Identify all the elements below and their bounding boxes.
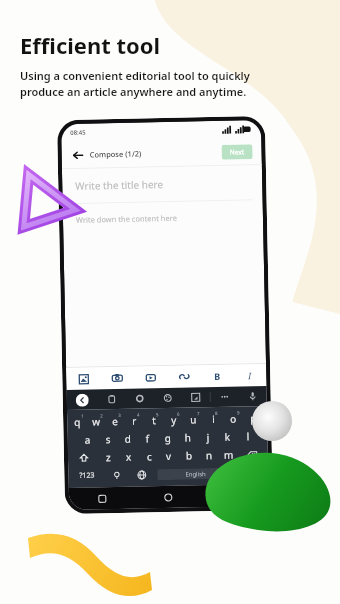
button[interactable]: Emoji <box>104 466 130 484</box>
staticText: k <box>224 430 231 444</box>
button[interactable]: b <box>179 446 199 465</box>
staticText: Compose (1/2) <box>89 148 142 160</box>
button[interactable]: g <box>157 429 178 447</box>
staticText: w <box>92 414 100 429</box>
staticText: u <box>190 412 197 426</box>
staticText: 3 <box>118 412 121 418</box>
button[interactable]: v <box>159 447 179 465</box>
staticText: i <box>212 412 215 426</box>
button[interactable]: f <box>137 429 158 448</box>
button[interactable]: h <box>177 428 198 447</box>
button[interactable]: Write the title here <box>62 165 263 203</box>
button[interactable]: Shift <box>70 448 98 467</box>
button[interactable]: n <box>199 446 219 464</box>
button[interactable]: Collapse keyboard <box>67 389 98 410</box>
staticText: s <box>105 432 111 446</box>
staticText: g <box>164 431 172 445</box>
staticText: Efficient tool <box>20 30 161 60</box>
staticText: z <box>106 450 111 464</box>
button[interactable]: t <box>145 411 165 429</box>
button[interactable]: i <box>205 410 225 428</box>
staticText: Next <box>229 147 245 157</box>
button[interactable]: l <box>237 427 258 445</box>
button[interactable]: Next <box>221 144 253 160</box>
staticText: d <box>124 432 132 446</box>
staticText: p <box>250 411 257 425</box>
button[interactable]: a <box>77 430 98 449</box>
button[interactable]: English <box>157 468 234 480</box>
staticText: 8 <box>215 410 218 416</box>
button[interactable]: u <box>185 410 205 429</box>
staticText: o <box>230 411 237 426</box>
button[interactable]: Home <box>135 485 202 509</box>
button[interactable]: Voice input <box>238 386 267 406</box>
button[interactable]: Change language <box>129 465 154 484</box>
button[interactable]: k <box>217 427 238 446</box>
staticText: Write down the content here <box>76 213 177 225</box>
button[interactable]: z <box>98 448 119 466</box>
staticText: 7 <box>197 410 200 416</box>
button[interactable]: Clipboard <box>97 389 126 409</box>
staticText: ?123 <box>79 470 95 481</box>
button[interactable]: Write down the content here <box>63 200 266 367</box>
button[interactable]: x <box>119 448 139 466</box>
staticText: v <box>166 449 172 463</box>
button[interactable]: Insert image <box>66 367 101 390</box>
button[interactable]: Back <box>202 484 269 507</box>
staticText: B <box>214 370 220 382</box>
button[interactable]: ?123 <box>70 466 105 485</box>
staticText: h <box>184 430 192 445</box>
staticText: 4 <box>137 411 140 418</box>
staticText: 9 <box>237 409 240 416</box>
button[interactable]: . <box>237 463 266 481</box>
staticText: Using a convenient editorial tool to qui… <box>20 68 250 99</box>
staticText: c <box>147 449 152 463</box>
button[interactable]: q <box>69 413 88 431</box>
staticText: n <box>206 448 213 462</box>
button[interactable]: w <box>88 412 107 431</box>
button[interactable]: Settings <box>125 388 154 409</box>
button[interactable]: s <box>97 430 118 448</box>
button[interactable]: Translate <box>181 387 210 408</box>
button[interactable]: Backspace <box>239 445 266 463</box>
staticText: I <box>248 369 251 381</box>
button[interactable]: Link <box>167 365 201 388</box>
button[interactable]: e <box>107 412 126 430</box>
staticText: b <box>186 448 193 462</box>
staticText: 6 <box>177 411 180 417</box>
staticText: e <box>112 414 118 428</box>
staticText: t <box>152 413 156 427</box>
button[interactable]: p <box>245 409 265 427</box>
button[interactable]: j <box>197 428 218 446</box>
button[interactable]: Bold <box>200 365 234 387</box>
button[interactable]: r <box>126 411 145 430</box>
staticText: q <box>74 415 81 429</box>
staticText: a <box>84 433 91 447</box>
button[interactable]: More options <box>210 386 239 407</box>
button[interactable]: Camera <box>100 367 135 389</box>
button[interactable]: y <box>165 411 185 429</box>
staticText: l <box>246 429 250 443</box>
staticText: y <box>171 413 177 427</box>
button[interactable]: c <box>139 447 159 466</box>
staticText: 2 <box>100 412 103 418</box>
button[interactable]: o <box>225 409 245 428</box>
staticText: Write the title here <box>75 177 163 193</box>
button[interactable]: d <box>117 430 138 448</box>
button[interactable]: Back <box>70 148 85 162</box>
button[interactable]: Recents <box>69 487 135 510</box>
staticText: English <box>185 470 206 479</box>
staticText: 1 <box>81 413 84 419</box>
staticText: f <box>145 431 150 445</box>
staticText: 5 <box>156 411 159 417</box>
staticText: x <box>126 450 132 464</box>
button[interactable]: Italic <box>233 364 267 387</box>
staticText: j <box>206 430 210 444</box>
button[interactable]: Video <box>134 366 168 389</box>
staticText: 08:45 <box>70 129 86 137</box>
button[interactable]: Stickers <box>153 388 182 408</box>
staticText: m <box>224 448 234 462</box>
button[interactable]: m <box>219 445 239 464</box>
